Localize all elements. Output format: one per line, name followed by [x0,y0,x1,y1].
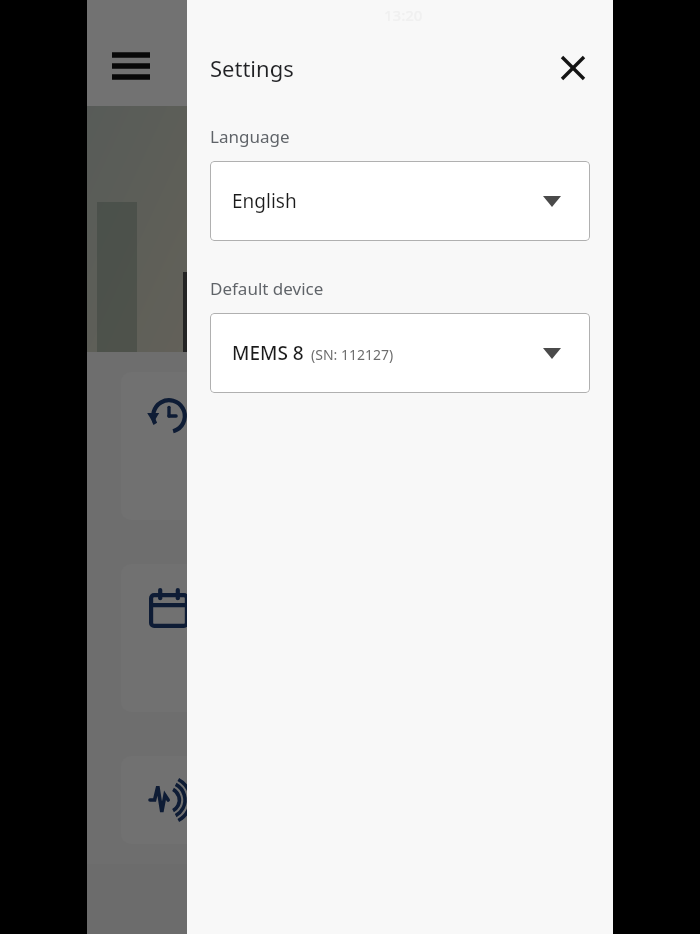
button[interactable]: MEMS 8 [210,313,590,393]
button[interactable]: Close [547,42,599,94]
staticText: Settings [210,53,294,83]
button[interactable] [121,564,579,712]
staticText: MEMS 8 [232,340,304,366]
staticText: Language [210,125,290,148]
button[interactable]: Menu [109,44,153,88]
button[interactable] [121,372,579,520]
staticText: Default device [210,277,324,300]
staticText: (SN: 112127) [311,345,394,364]
staticText: English [232,188,297,214]
button[interactable] [121,756,579,844]
button[interactable]: English [210,161,590,241]
